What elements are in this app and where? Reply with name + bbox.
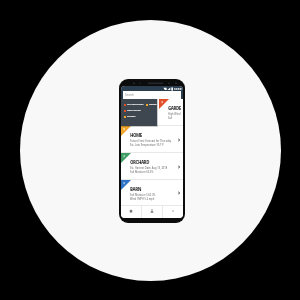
button[interactable]: GARDEN [121, 99, 183, 126]
button[interactable]: Profile [142, 206, 162, 218]
staticText: ORCHARD [130, 159, 149, 165]
button[interactable]: OTHERS [124, 115, 136, 118]
staticText: HOME [130, 132, 142, 138]
staticText: Est. Harvest Date: Aug 15, 2018 [130, 166, 168, 169]
staticText: Est. Low Temperature 35.1°F [130, 143, 164, 146]
staticText: GARDEN [168, 105, 183, 111]
button[interactable]: HOME [121, 126, 183, 153]
staticText: Future Frost Forecast for Thursday [130, 139, 172, 142]
staticText: Soil Moisture 65.3% [130, 170, 154, 173]
staticText: ALL MONITORS [127, 103, 144, 106]
staticText: High Wind Warning [168, 112, 183, 115]
button[interactable]: FREEZE FORECAST [146, 103, 157, 106]
button[interactable]: HIGH WATER [124, 109, 141, 112]
staticText: Wind 1MPH 5.2 mph [130, 197, 155, 200]
button[interactable]: Search [123, 91, 181, 99]
staticText: Soil Moisture 5.65.3% [130, 193, 156, 196]
staticText: FREEZE FORECAST [149, 103, 157, 106]
button[interactable]: BARN [121, 180, 183, 206]
staticText: OTHERS [127, 115, 136, 118]
button[interactable]: ORCHARD [121, 153, 183, 180]
button[interactable]: Home [121, 206, 141, 218]
staticText: BARN [130, 186, 141, 192]
staticText: Search [125, 93, 135, 97]
button[interactable]: ALL MONITORS [124, 103, 144, 106]
staticText: HIGH WATER [127, 109, 141, 112]
staticText: Soil Moisture 44.3% [168, 116, 183, 119]
button[interactable]: More [163, 206, 183, 218]
